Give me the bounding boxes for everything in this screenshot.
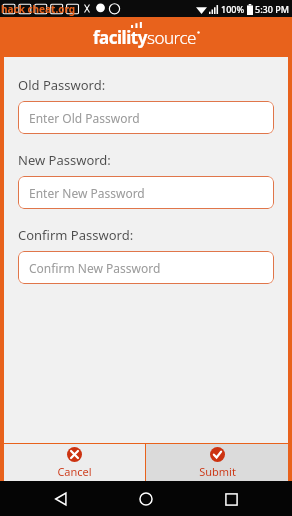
- button[interactable]: Home: [133, 486, 159, 512]
- button[interactable]: Recents: [218, 486, 244, 512]
- staticText: facility: [93, 26, 147, 49]
- button[interactable]: Cancel: [4, 444, 145, 481]
- staticText: Enter New Password: [29, 185, 145, 201]
- staticText: 100%: [221, 3, 245, 15]
- staticText: Confirm Password:: [18, 226, 134, 244]
- staticText: Confirm New Password: [29, 260, 161, 276]
- button[interactable]: Back: [48, 486, 74, 512]
- staticText: Enter Old Password: [29, 110, 140, 126]
- button[interactable]: Enter New Password: [18, 176, 274, 209]
- staticText: source: [147, 26, 196, 49]
- staticText: 5:30 PM: [255, 3, 289, 15]
- button[interactable]: Submit: [146, 444, 288, 481]
- staticText: Submit: [199, 464, 236, 479]
- staticText: Cancel: [57, 464, 92, 479]
- button[interactable]: Enter Old Password: [18, 101, 274, 134]
- button[interactable]: Confirm New Password: [18, 251, 274, 284]
- staticText: hack cheat.org: [1, 2, 76, 16]
- staticText: Old Password:: [18, 76, 106, 94]
- staticText: New Password:: [18, 151, 111, 169]
